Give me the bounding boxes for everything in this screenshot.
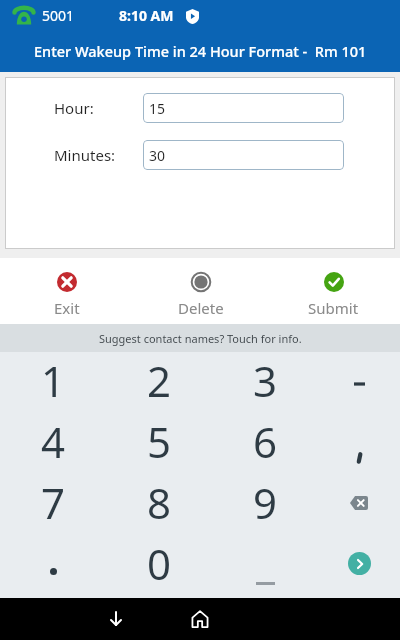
staticText: 1 <box>41 352 66 409</box>
staticText: 5001 <box>42 6 75 25</box>
button[interactable] <box>212 533 318 594</box>
button[interactable] <box>160 598 240 640</box>
button[interactable]: Exit <box>0 258 134 324</box>
button[interactable] <box>0 533 106 594</box>
staticText: 6 <box>253 413 278 470</box>
staticText: 3 <box>253 352 278 409</box>
button[interactable]: Suggest contact names? Touch for info. <box>0 324 400 352</box>
staticText: Enter Wakeup Time in 24 Hour Format - Rm… <box>34 41 367 61</box>
button[interactable]: Delete <box>134 258 267 324</box>
staticText: Exit <box>54 298 80 318</box>
staticText: 7 <box>41 474 66 531</box>
button[interactable]: 5 <box>106 411 212 472</box>
staticText: 8:10 AM <box>119 6 174 25</box>
button[interactable] <box>348 552 371 575</box>
button[interactable]: 8 <box>106 472 212 533</box>
staticText: Minutes: <box>54 145 116 165</box>
staticText: 30 <box>149 146 166 165</box>
button[interactable]: 30 <box>143 140 344 170</box>
staticText: Hour: <box>54 98 94 118</box>
button[interactable]: 1 <box>0 350 106 411</box>
button[interactable]: 0 <box>106 533 212 594</box>
staticText: 2 <box>147 352 172 409</box>
staticText: Submit <box>308 298 359 318</box>
button[interactable] <box>318 411 400 472</box>
button[interactable]: 6 <box>212 411 318 472</box>
button[interactable]: 4 <box>0 411 106 472</box>
button[interactable]: 2 <box>106 350 212 411</box>
button[interactable]: 7 <box>0 472 106 533</box>
button[interactable]: Submit <box>267 258 400 324</box>
staticText: Suggest contact names? Touch for info. <box>99 331 302 346</box>
button[interactable] <box>0 598 160 640</box>
button[interactable]: 3 <box>212 350 318 411</box>
staticText: 8 <box>147 474 172 531</box>
staticText: 15 <box>149 99 166 118</box>
button[interactable]: 15 <box>143 93 344 123</box>
staticText: 9 <box>253 474 278 531</box>
button[interactable] <box>318 472 400 533</box>
staticText: Delete <box>178 298 224 318</box>
button[interactable] <box>318 533 400 594</box>
staticText: 5 <box>147 413 172 470</box>
button[interactable] <box>318 350 400 411</box>
button[interactable]: 9 <box>212 472 318 533</box>
staticText: 0 <box>147 535 172 592</box>
staticText: 4 <box>41 413 66 470</box>
